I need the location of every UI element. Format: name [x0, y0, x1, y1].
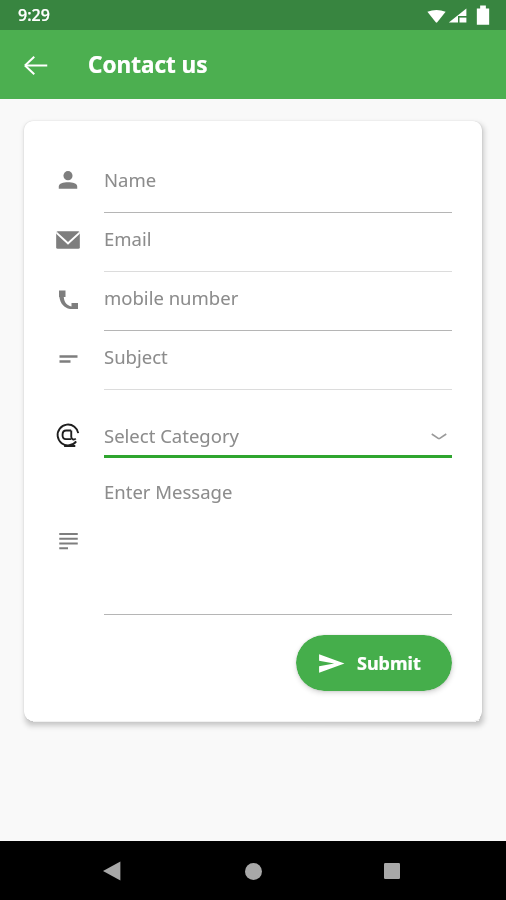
staticText: 9:29 — [18, 4, 50, 26]
staticText: Contact us — [88, 49, 208, 80]
staticText: Submit — [357, 651, 421, 676]
staticText: mobile number — [104, 285, 239, 310]
button[interactable]: Name — [56, 164, 452, 213]
button[interactable]: Enter Message — [56, 474, 452, 616]
button[interactable]: mobile number — [56, 282, 452, 331]
button[interactable]: Subject — [56, 341, 452, 390]
button[interactable]: Back — [94, 853, 130, 889]
staticText: Enter Message — [104, 479, 233, 504]
button[interactable]: Submit — [296, 635, 452, 691]
staticText: Subject — [104, 344, 168, 369]
button[interactable]: Select Category — [56, 409, 452, 457]
button[interactable]: Email — [56, 223, 452, 272]
button[interactable]: Show category options — [426, 423, 452, 449]
button[interactable]: Recent apps — [374, 853, 410, 889]
staticText: Name — [104, 167, 157, 192]
staticText: Select Category — [104, 423, 239, 448]
button[interactable]: Back — [15, 45, 55, 85]
button[interactable]: Home — [235, 853, 271, 889]
staticText: Email — [104, 226, 152, 251]
